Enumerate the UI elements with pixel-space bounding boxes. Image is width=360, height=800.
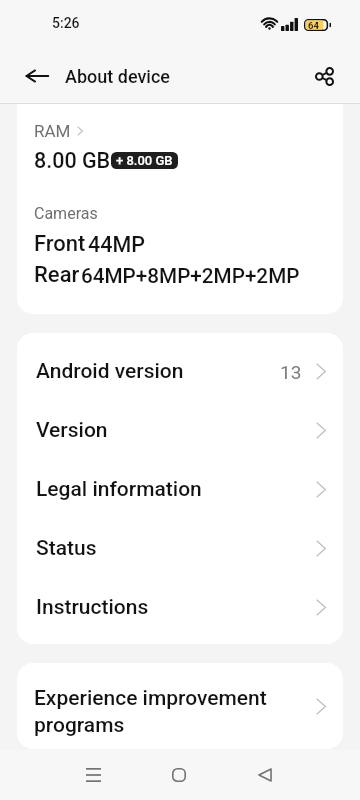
staticText: + 8.00 GB bbox=[116, 153, 173, 168]
button[interactable]: Home bbox=[156, 752, 202, 798]
button[interactable]: Experience improvement programs bbox=[17, 663, 343, 749]
button[interactable]: Status bbox=[17, 519, 343, 578]
staticText: Legal information bbox=[36, 477, 202, 502]
staticText: Rear bbox=[34, 262, 80, 288]
staticText: 64 bbox=[308, 20, 319, 31]
staticText: RAM bbox=[34, 121, 71, 141]
staticText: Front bbox=[34, 231, 86, 257]
staticText: 5:26 bbox=[52, 15, 80, 31]
staticText: 64MP+8MP+2MP+2MP bbox=[81, 264, 300, 288]
staticText: Android version bbox=[36, 359, 184, 384]
button[interactable]: Recent apps bbox=[70, 752, 116, 798]
button[interactable]: Instructions bbox=[17, 578, 343, 637]
button[interactable]: Legal information bbox=[17, 460, 343, 519]
staticText: Instructions bbox=[36, 595, 149, 620]
staticText: 8.00 GB bbox=[34, 148, 111, 173]
staticText: Cameras bbox=[34, 204, 98, 223]
staticText: 44MP bbox=[88, 232, 145, 257]
button[interactable]: Version bbox=[17, 401, 343, 460]
staticText: Experience improvement programs bbox=[34, 686, 316, 737]
button[interactable]: Back bbox=[242, 752, 288, 798]
staticText: Version bbox=[36, 418, 108, 443]
button[interactable]: Navigate up bbox=[18, 57, 56, 95]
staticText: 13 bbox=[280, 361, 302, 383]
staticText: About device bbox=[65, 66, 170, 87]
button[interactable]: Android version bbox=[17, 342, 343, 401]
staticText: Status bbox=[36, 536, 97, 561]
button[interactable]: Share bbox=[305, 57, 343, 95]
